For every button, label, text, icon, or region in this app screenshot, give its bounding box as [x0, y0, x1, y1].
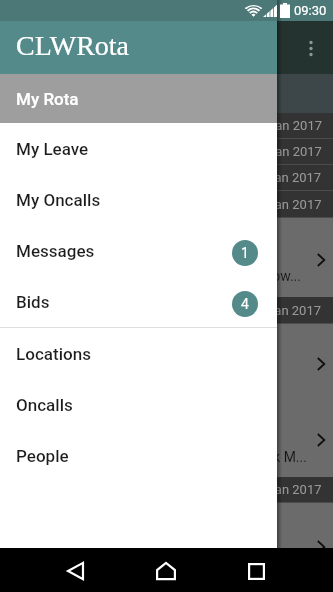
button[interactable]: Home [150, 555, 182, 587]
staticText: 09:30 [294, 3, 327, 18]
staticText: My Leave [16, 139, 89, 159]
button[interactable]: Messages [0, 225, 277, 276]
staticText: Messages [16, 241, 95, 261]
staticText: Wed 04 Jan 2017 [221, 197, 322, 212]
button[interactable] [0, 503, 333, 573]
staticText: Mon 02 Jan 2017 [221, 144, 322, 159]
button[interactable]: Tomorrow... [0, 218, 333, 297]
button[interactable]: Fri 06 Jan 2017 [0, 477, 333, 502]
button[interactable]: Bids [0, 276, 277, 327]
staticText: 4 [241, 296, 249, 312]
staticText: My Rota [16, 89, 79, 109]
button[interactable]: More options [294, 31, 328, 65]
button[interactable]: Wed 04 Jan 2017 [0, 191, 333, 217]
button[interactable]: Week M... [0, 403, 333, 477]
button[interactable]: Mon 02 Jan 2017 [0, 139, 333, 164]
button[interactable]: Oncalls [0, 379, 277, 430]
staticText: My Oncalls [16, 190, 101, 210]
staticText: Sun 01 Jan 2017 [225, 118, 322, 133]
staticText: Tomorrow... [227, 268, 302, 284]
staticText: Tue 03 Jan 2017 [225, 170, 322, 185]
staticText: Week M... [246, 449, 307, 465]
button[interactable]: Thu 05 Jan 2017 [0, 297, 333, 323]
staticText: Thu 05 Jan 2017 [224, 303, 322, 318]
staticText: Oncalls [16, 395, 73, 415]
button[interactable]: My Leave [0, 123, 277, 174]
button[interactable]: Locations [0, 328, 277, 379]
button[interactable]: My Rota [0, 74, 277, 123]
button[interactable]: Tue 03 Jan 2017 [0, 165, 333, 190]
button[interactable]: People [0, 430, 277, 481]
button[interactable] [0, 324, 333, 403]
button[interactable]: Back [59, 555, 91, 587]
staticText: 1 [241, 245, 249, 261]
staticText: CLWRota [16, 30, 130, 61]
staticText: Locations [16, 344, 91, 364]
button[interactable]: Recent apps [240, 555, 272, 587]
staticText: Bids [16, 292, 50, 312]
button[interactable]: Sun 01 Jan 2017 [0, 113, 333, 138]
staticText: Fri 06 Jan 2017 [232, 482, 322, 497]
staticText: People [16, 446, 69, 466]
button[interactable]: My Oncalls [0, 174, 277, 225]
